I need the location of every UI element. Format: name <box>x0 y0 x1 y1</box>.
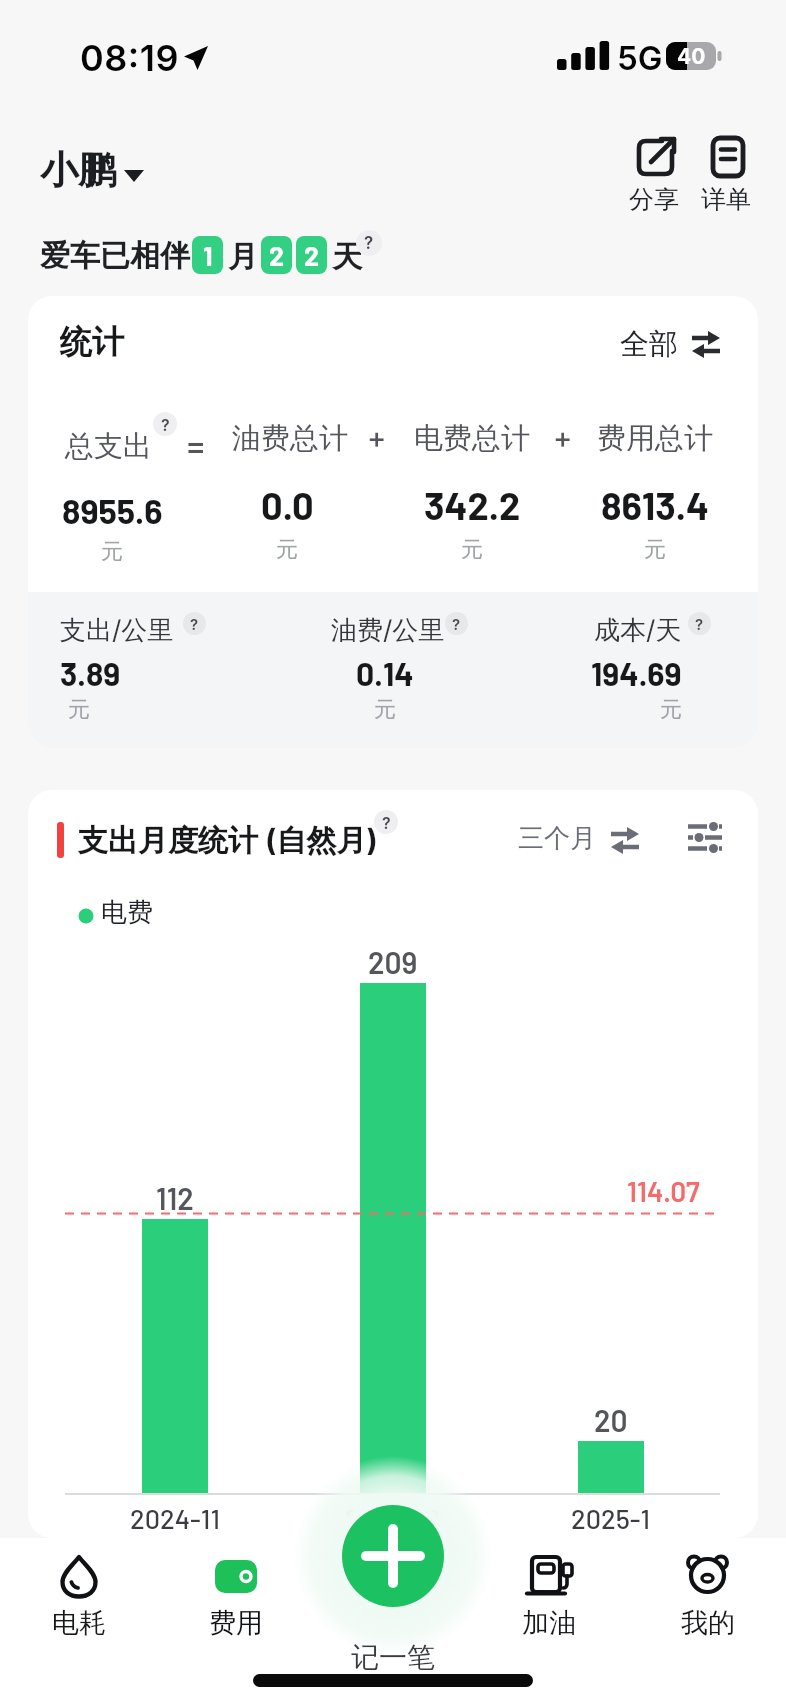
staticText: 0.14 <box>356 654 414 692</box>
staticText: = <box>185 426 207 465</box>
staticText: 8613.4 <box>601 482 709 528</box>
staticText: 20 <box>594 1402 628 1438</box>
button[interactable]: 加油 <box>509 1542 589 1642</box>
staticText: 支出/公里 <box>60 614 174 647</box>
staticText: 电耗 <box>52 1606 106 1640</box>
staticText: 2024-12 <box>345 1502 441 1534</box>
staticText: 成本/天 <box>594 614 682 647</box>
staticText: ? <box>452 615 461 633</box>
staticText: 2025-1 <box>571 1502 651 1534</box>
button[interactable]: 详单 <box>698 128 754 220</box>
button[interactable]: 费用 <box>196 1542 276 1642</box>
staticText: 342.2 <box>424 482 521 528</box>
staticText: 电费总计 <box>414 420 530 457</box>
button[interactable] <box>342 1505 444 1607</box>
staticText: 统计 <box>60 322 124 362</box>
staticText: 元 <box>374 696 396 724</box>
staticText: 元 <box>644 536 666 564</box>
button[interactable]: 三个月 <box>508 814 638 858</box>
staticText: 元 <box>68 696 90 724</box>
staticText: 爱车已相伴 <box>40 237 190 275</box>
button[interactable]: 分享 <box>626 128 682 220</box>
button[interactable]: 全部 <box>588 324 728 364</box>
staticText: 记一笔 <box>351 1640 435 1675</box>
staticText: 114.07 <box>627 1174 700 1208</box>
staticText: 支出月度统计 (自然月) <box>78 822 378 860</box>
button[interactable] <box>680 816 728 860</box>
staticText: 小鹏 <box>40 146 116 194</box>
staticText: 元 <box>461 536 483 564</box>
staticText: 194.69 <box>591 654 682 692</box>
staticText: 分享 <box>629 184 679 215</box>
staticText: ? <box>364 233 374 254</box>
button[interactable]: 小鹏 <box>38 140 158 196</box>
staticText: + <box>367 420 387 455</box>
staticText: 月 <box>228 238 258 276</box>
staticText: ? <box>382 813 391 832</box>
staticText: 112 <box>156 1180 194 1216</box>
staticText: + <box>553 420 573 455</box>
staticText: 详单 <box>701 184 751 215</box>
staticText: 三个月 <box>518 822 596 855</box>
staticText: 2 <box>304 239 320 271</box>
staticText: 费用 <box>209 1606 263 1640</box>
staticText: 元 <box>660 696 682 724</box>
staticText: 费用总计 <box>597 420 713 457</box>
button[interactable]: 我的 <box>668 1542 748 1642</box>
staticText: 5G <box>617 38 663 78</box>
staticText: 8955.6 <box>62 490 163 531</box>
staticText: 天 <box>332 238 362 276</box>
staticText: 0.0 <box>261 482 314 528</box>
staticText: 总支出 <box>65 428 152 465</box>
staticText: 电费 <box>101 896 153 929</box>
staticText: 1 <box>203 239 213 271</box>
staticText: 209 <box>368 944 418 980</box>
staticText: 加油 <box>522 1606 576 1640</box>
staticText: 全部 <box>620 326 678 363</box>
staticText: 3.89 <box>60 654 121 692</box>
staticText: 元 <box>276 536 298 564</box>
staticText: 40 <box>677 44 706 69</box>
staticText: 08:19 <box>80 36 180 80</box>
staticText: ? <box>695 615 704 633</box>
staticText: 油费/公里 <box>331 614 445 647</box>
staticText: 油费总计 <box>232 420 348 457</box>
staticText: ? <box>161 415 170 434</box>
staticText: 2024-11 <box>130 1502 220 1534</box>
staticText: 元 <box>101 538 123 566</box>
button[interactable]: 电耗 <box>39 1542 119 1642</box>
staticText: ? <box>190 615 199 633</box>
staticText: 我的 <box>681 1606 735 1640</box>
staticText: 2 <box>269 239 285 271</box>
